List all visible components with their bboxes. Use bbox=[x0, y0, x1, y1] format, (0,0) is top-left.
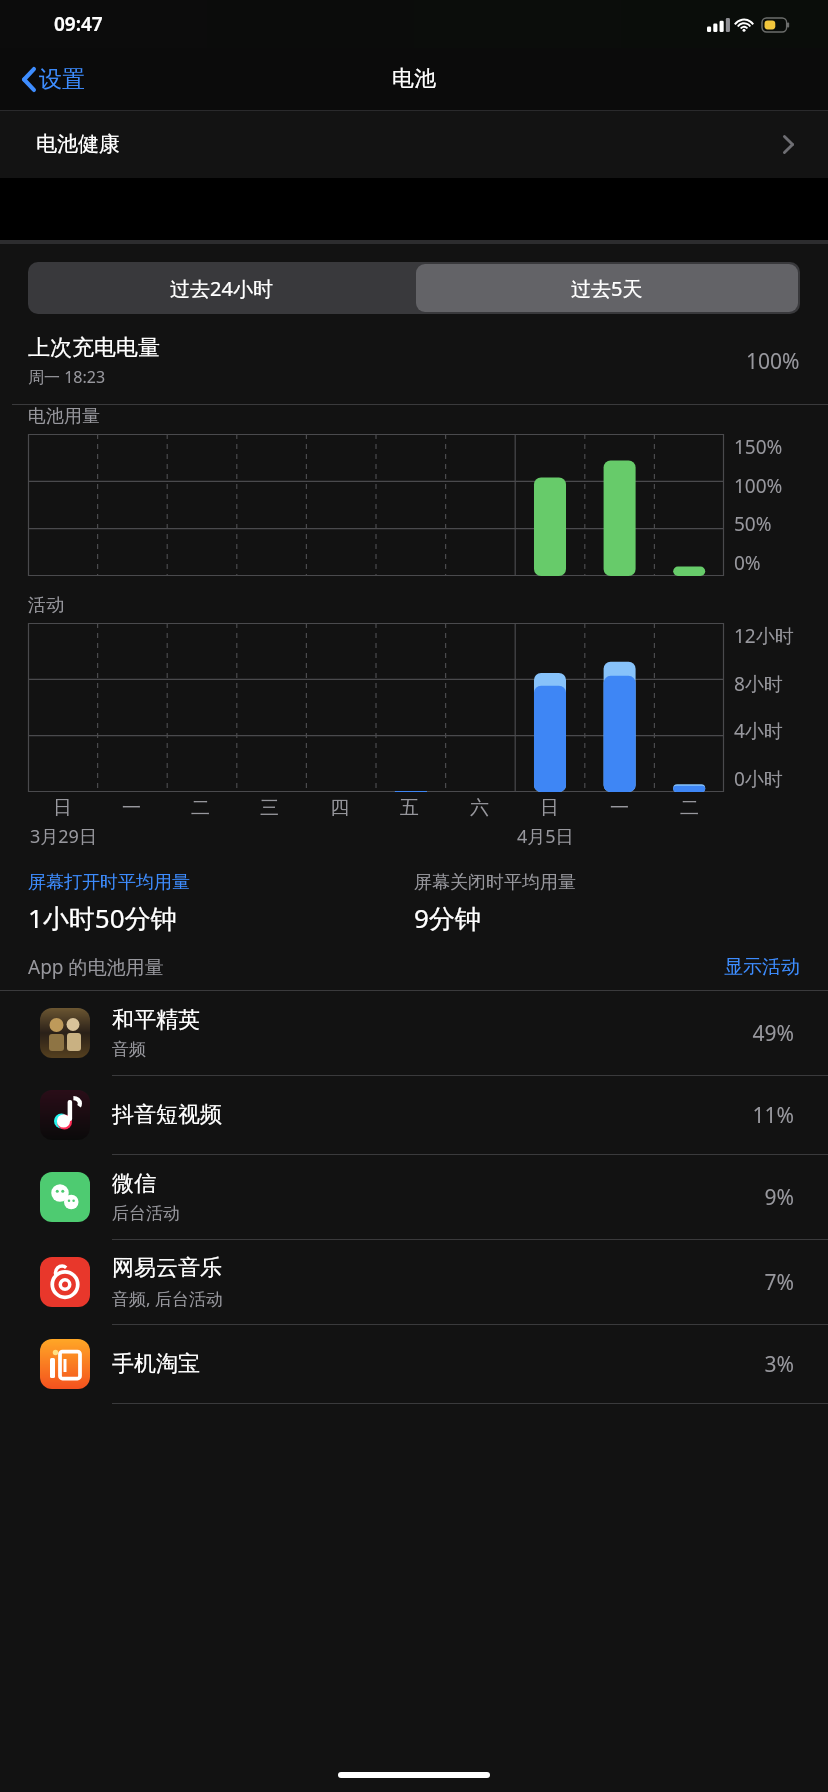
staticText: 4月5日 bbox=[517, 824, 574, 849]
staticText: 屏幕打开时平均用量 bbox=[28, 871, 190, 894]
staticText: 显示活动 bbox=[724, 955, 800, 979]
staticText: 日 bbox=[53, 796, 72, 820]
button[interactable]: 过去24小时 bbox=[28, 262, 414, 314]
staticText: 150% bbox=[734, 434, 783, 460]
staticText: 抖音短视频 bbox=[112, 1101, 222, 1129]
staticText: 设置 bbox=[39, 65, 85, 94]
button[interactable]: 抖音短视频 bbox=[0, 1076, 828, 1154]
staticText: 三 bbox=[260, 796, 279, 820]
staticText: 手机淘宝 bbox=[112, 1350, 200, 1378]
staticText: 3% bbox=[764, 1350, 794, 1379]
staticText: 50% bbox=[734, 511, 772, 537]
button[interactable]: 和平精英 bbox=[0, 991, 828, 1075]
staticText: 音频 bbox=[112, 1039, 146, 1060]
staticText: 过去5天 bbox=[571, 275, 643, 302]
staticText: 上次充电电量 bbox=[28, 334, 160, 362]
button[interactable]: 微信 bbox=[0, 1155, 828, 1239]
staticText: 六 bbox=[470, 796, 489, 820]
staticText: App 的电池用量 bbox=[28, 954, 164, 980]
staticText: 后台活动 bbox=[112, 1203, 180, 1224]
staticText: 日 bbox=[540, 796, 559, 820]
staticText: 音频, 后台活动 bbox=[112, 1287, 223, 1310]
staticText: 二 bbox=[680, 796, 699, 820]
staticText: 网易云音乐 bbox=[112, 1254, 222, 1282]
staticText: 过去24小时 bbox=[170, 275, 273, 302]
staticText: 100% bbox=[734, 473, 783, 499]
button[interactable]: 设置 bbox=[16, 59, 91, 100]
staticText: 一 bbox=[610, 796, 629, 820]
staticText: 四 bbox=[330, 796, 349, 820]
staticText: 3月29日 bbox=[30, 824, 97, 849]
staticText: 屏幕关闭时平均用量 bbox=[414, 871, 576, 894]
staticText: 微信 bbox=[112, 1170, 156, 1198]
staticText: 7% bbox=[764, 1268, 794, 1297]
button[interactable]: 显示活动 bbox=[724, 955, 800, 979]
staticText: 12小时 bbox=[734, 623, 794, 649]
staticText: 4小时 bbox=[734, 718, 783, 744]
button[interactable]: 网易云音乐 bbox=[0, 1240, 828, 1324]
staticText: 49% bbox=[752, 1019, 794, 1048]
button[interactable]: 电池健康 bbox=[0, 110, 828, 178]
staticText: 活动 bbox=[28, 594, 64, 617]
staticText: 11% bbox=[752, 1101, 794, 1130]
staticText: 周一 18:23 bbox=[28, 366, 106, 388]
staticText: 和平精英 bbox=[112, 1006, 200, 1034]
button[interactable]: 过去5天 bbox=[416, 264, 798, 312]
staticText: 1小时50分钟 bbox=[28, 900, 177, 936]
staticText: 电池用量 bbox=[28, 405, 100, 428]
staticText: 100% bbox=[746, 347, 800, 376]
staticText: 8小时 bbox=[734, 671, 783, 697]
staticText: 9% bbox=[764, 1183, 794, 1212]
staticText: 二 bbox=[191, 796, 210, 820]
staticText: 09:47 bbox=[54, 11, 103, 37]
staticText: 0% bbox=[734, 550, 761, 576]
staticText: 一 bbox=[122, 796, 141, 820]
staticText: 0小时 bbox=[734, 766, 783, 792]
staticText: 电池健康 bbox=[36, 131, 120, 157]
button[interactable]: 手机淘宝 bbox=[0, 1325, 828, 1403]
staticText: 五 bbox=[400, 796, 419, 820]
staticText: 电池 bbox=[392, 65, 436, 93]
staticText: 9分钟 bbox=[414, 900, 481, 936]
